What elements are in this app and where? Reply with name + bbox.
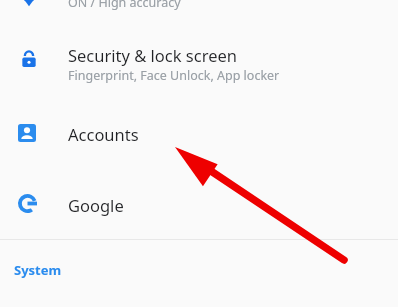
staticText: Security & lock screen xyxy=(68,44,237,66)
button[interactable]: Accounts xyxy=(0,108,398,160)
staticText: Fingerprint, Face Unlock, App locker xyxy=(68,67,280,84)
staticText: Accounts xyxy=(68,123,139,145)
staticText: ON / High accuracy xyxy=(68,0,181,11)
staticText: System xyxy=(14,261,62,279)
staticText: Google xyxy=(68,194,124,216)
button[interactable] xyxy=(0,0,398,12)
button[interactable]: Security & lock screen xyxy=(0,34,398,92)
button[interactable]: Google xyxy=(0,179,398,231)
button[interactable]: System xyxy=(0,248,398,290)
